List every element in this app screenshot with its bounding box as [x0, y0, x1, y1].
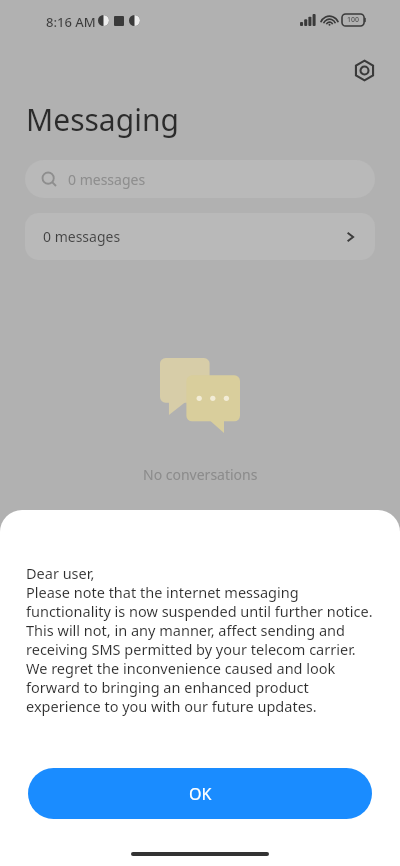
- staticText: 8:16 AM: [46, 13, 96, 31]
- staticText: Messaging: [26, 99, 179, 140]
- button[interactable]: OK: [28, 768, 372, 819]
- staticText: OK: [189, 783, 212, 805]
- staticText: No conversations: [143, 465, 258, 484]
- staticText: Dear user, Please note that the internet…: [26, 563, 374, 717]
- button[interactable]: 0 messages: [25, 213, 375, 260]
- staticText: 0 messages: [43, 227, 121, 246]
- button[interactable]: 0 messages: [25, 160, 375, 198]
- button[interactable]: Settings: [344, 50, 384, 90]
- staticText: 100: [347, 15, 360, 25]
- staticText: 0 messages: [68, 170, 146, 189]
